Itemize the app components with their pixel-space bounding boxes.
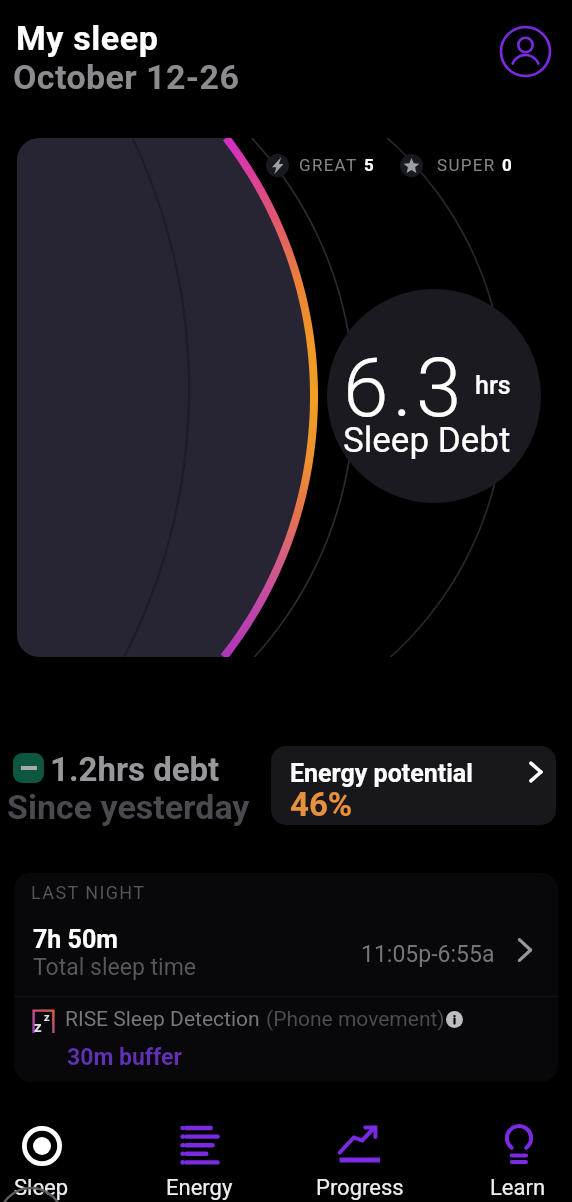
- staticText: RISE Sleep Detection: [65, 1007, 260, 1032]
- button[interactable]: [0, 1114, 92, 1196]
- staticText: My sleep: [16, 18, 159, 58]
- staticText: GREAT: [299, 155, 358, 175]
- staticText: 1.2hrs debt: [50, 750, 220, 789]
- staticText: 0: [502, 155, 512, 175]
- staticText: October 12-26: [13, 57, 240, 97]
- staticText: Sleep: [14, 1175, 69, 1201]
- staticText: Total sleep time: [33, 954, 197, 981]
- staticText: 46%: [290, 785, 353, 824]
- staticText: (Phone movement): [266, 1007, 445, 1032]
- staticText: 11:05p-6:55a: [361, 941, 495, 968]
- staticText: 6.3: [343, 340, 466, 436]
- button[interactable]: [150, 1114, 250, 1196]
- button[interactable]: Energy potential: [271, 746, 556, 825]
- staticText: z: [34, 1018, 42, 1036]
- staticText: LAST NIGHT: [31, 882, 146, 903]
- staticText: Progress: [316, 1175, 404, 1201]
- staticText: z: [44, 1011, 50, 1024]
- staticText: 5: [364, 155, 374, 175]
- button[interactable]: Profile: [498, 24, 553, 79]
- button[interactable]: [310, 1114, 410, 1196]
- staticText: 30m buffer: [67, 1044, 182, 1071]
- button[interactable]: [469, 1114, 569, 1196]
- button[interactable]: 7h 50m: [14, 905, 558, 996]
- staticText: Energy potential: [290, 759, 473, 788]
- staticText: hrs: [475, 371, 511, 400]
- staticText: Since yesterday: [7, 787, 250, 827]
- staticText: Energy: [166, 1175, 233, 1201]
- staticText: Learn: [490, 1175, 546, 1201]
- staticText: 7h 50m: [33, 925, 118, 954]
- staticText: SUPER: [437, 155, 496, 175]
- staticText: Sleep Debt: [343, 420, 511, 461]
